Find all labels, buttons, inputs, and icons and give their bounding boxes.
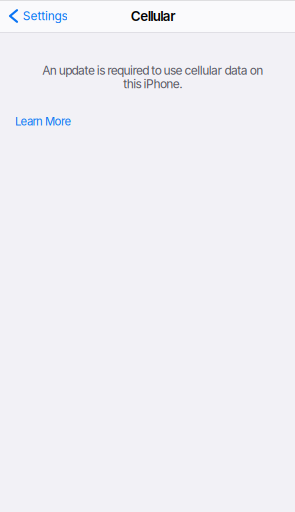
staticText: Settings — [23, 9, 67, 23]
button[interactable]: Learn More — [0, 91, 79, 133]
staticText: Learn More — [15, 114, 71, 128]
staticText: An update is required to use cellular da… — [42, 63, 263, 91]
staticText: Cellular — [131, 8, 175, 24]
button[interactable]: Back to Settings — [0, 0, 90, 32]
